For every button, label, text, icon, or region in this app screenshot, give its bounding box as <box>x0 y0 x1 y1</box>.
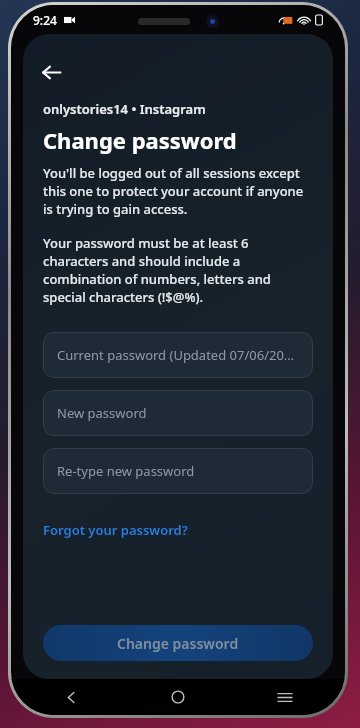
staticText: Forgot your password? <box>43 521 188 539</box>
staticText: Change password <box>43 125 237 155</box>
button[interactable]: Forgot your password? <box>43 519 188 541</box>
staticText: Change password <box>117 634 239 653</box>
button[interactable]: Current password (Updated 07/06/20… <box>43 332 313 378</box>
button[interactable]: Home <box>158 679 198 715</box>
staticText: Your password must be at least 6 charact… <box>43 234 313 306</box>
staticText: Current password (Updated 07/06/20… <box>57 346 295 364</box>
button[interactable]: Back <box>29 50 73 94</box>
staticText: You'll be logged out of all sessions exc… <box>43 164 313 218</box>
button[interactable]: New password <box>43 390 313 436</box>
button[interactable]: Re-type new password <box>43 448 313 494</box>
button[interactable]: Recent apps <box>265 679 305 715</box>
staticText: 9:24 <box>33 12 57 28</box>
staticText: Re-type new password <box>57 462 195 480</box>
staticText: New password <box>57 404 147 422</box>
button[interactable]: Back <box>51 679 91 715</box>
button[interactable]: Change password <box>43 625 313 661</box>
staticText: onlystories14 • Instagram <box>43 100 206 118</box>
